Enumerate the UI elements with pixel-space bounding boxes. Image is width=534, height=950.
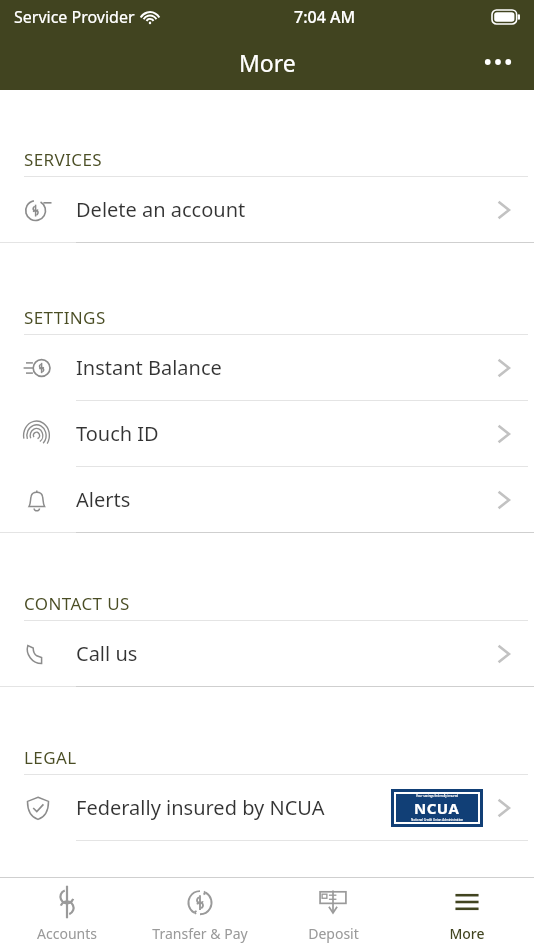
button[interactable]: Delete an account xyxy=(0,177,534,242)
button[interactable]: More options xyxy=(470,34,526,90)
staticText: CONTACT US xyxy=(24,592,130,615)
button[interactable]: Instant Balance xyxy=(0,335,534,400)
button[interactable]: More xyxy=(400,878,534,950)
button[interactable]: Alerts xyxy=(0,467,534,532)
staticText: More xyxy=(239,47,296,78)
staticText: National Credit Union Administration xyxy=(411,818,464,822)
staticText: Instant Balance xyxy=(76,354,222,381)
staticText: Alerts xyxy=(76,486,131,513)
button[interactable]: Transfer & Pay xyxy=(133,878,266,950)
staticText: SETTINGS xyxy=(24,306,106,329)
staticText: Accounts xyxy=(37,924,97,943)
staticText: More xyxy=(449,924,485,943)
staticText: 7:04 AM xyxy=(294,6,356,28)
button[interactable]: Deposit xyxy=(266,878,400,950)
staticText: Federally insured by NCUA xyxy=(76,794,325,821)
button[interactable]: Accounts xyxy=(0,878,133,950)
staticText: Service Provider xyxy=(14,6,135,28)
button[interactable]: Touch ID xyxy=(0,401,534,466)
button[interactable]: Federally insured by NCUA xyxy=(0,775,534,840)
staticText: SERVICES xyxy=(24,148,103,171)
button[interactable]: Call us xyxy=(0,621,534,686)
staticText: Call us xyxy=(76,640,138,667)
staticText: NCUA xyxy=(414,798,460,818)
staticText: LEGAL xyxy=(24,746,77,769)
staticText: Deposit xyxy=(308,924,359,943)
staticText: Transfer & Pay xyxy=(152,924,248,943)
staticText: Your savings federally insured xyxy=(416,794,459,798)
staticText: Touch ID xyxy=(76,420,159,447)
staticText: Delete an account xyxy=(76,196,246,223)
